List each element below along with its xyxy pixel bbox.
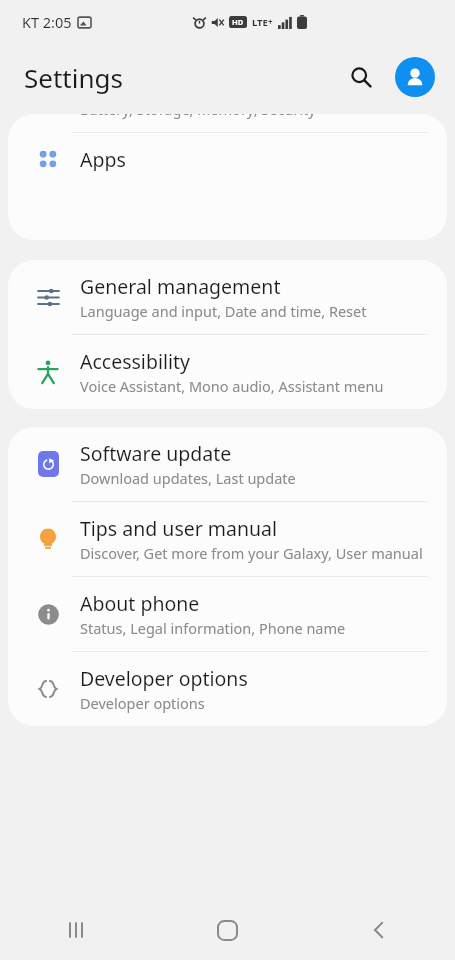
button[interactable]: Recent apps xyxy=(0,900,151,960)
staticText: Language and input, Date and time, Reset xyxy=(80,301,367,321)
staticText: Discover, Get more from your Galaxy, Use… xyxy=(80,543,423,563)
staticText: Battery, Storage, Memory, Security xyxy=(80,114,316,119)
staticText: Tips and user manual xyxy=(80,515,278,542)
button[interactable]: Apps xyxy=(8,133,447,184)
staticText: Settings xyxy=(24,60,123,95)
staticText: About phone xyxy=(80,590,200,617)
staticText: + xyxy=(268,16,273,27)
button[interactable]: Accessibility xyxy=(8,335,447,409)
staticText: Developer options xyxy=(80,693,205,713)
staticText: Software update xyxy=(80,440,232,467)
staticText: LTE xyxy=(252,16,268,29)
button[interactable]: Device care xyxy=(8,114,447,132)
staticText: Download updates, Last update xyxy=(80,468,296,488)
staticText: Developer options xyxy=(80,665,248,692)
staticText: HD xyxy=(232,17,244,27)
button[interactable]: Software update xyxy=(8,427,447,501)
button[interactable]: General management xyxy=(8,260,447,334)
button[interactable]: About phone xyxy=(8,577,447,651)
staticText: KT 2:05 xyxy=(22,12,72,32)
staticText: Voice Assistant, Mono audio, Assistant m… xyxy=(80,376,384,396)
button[interactable]: Home xyxy=(151,900,303,960)
staticText: Status, Legal information, Phone name xyxy=(80,618,346,638)
staticText: General management xyxy=(80,273,281,300)
button[interactable]: Tips and user manual xyxy=(8,502,447,576)
button[interactable]: Developer options xyxy=(8,652,447,726)
button[interactable]: Account xyxy=(395,57,435,97)
staticText: Apps xyxy=(80,146,126,171)
staticText: Accessibility xyxy=(80,348,190,375)
button[interactable]: Search xyxy=(341,57,381,97)
button[interactable]: Back xyxy=(303,900,455,960)
